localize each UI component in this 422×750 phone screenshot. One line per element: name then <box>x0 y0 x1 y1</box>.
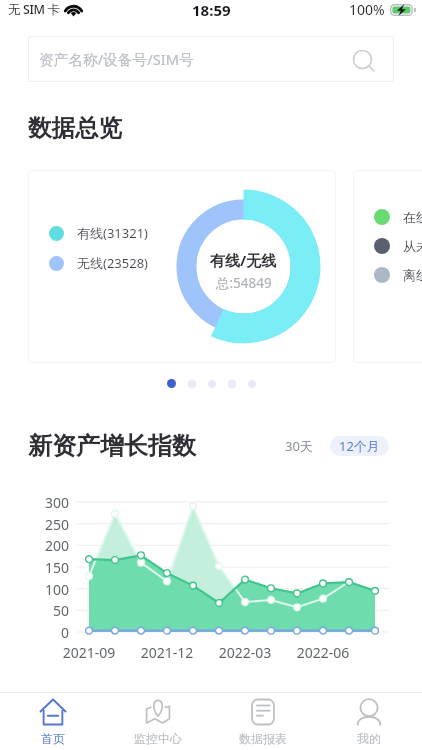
button[interactable]: 12个月 <box>330 436 389 456</box>
button[interactable]: 监控中心 <box>105 693 210 750</box>
button[interactable]: 首页 <box>0 693 105 750</box>
staticText: 监控中心 <box>134 731 182 746</box>
staticText: 数据总览 <box>28 113 122 143</box>
staticText: 300 <box>0 493 69 512</box>
staticText: 30天 <box>285 437 313 455</box>
button[interactable]: 30天 <box>277 432 321 460</box>
staticText: 18:59 <box>192 0 231 20</box>
staticText: 有线/无线 <box>210 250 277 270</box>
staticText: 在线(30021) <box>403 208 422 226</box>
staticText: 250 <box>0 515 69 534</box>
staticText: 有线(31321) <box>77 224 148 242</box>
staticText: 新资产增长指数 <box>28 431 196 461</box>
button[interactable] <box>167 379 176 388</box>
staticText: 2022-03 <box>213 643 277 662</box>
staticText: 首页 <box>41 731 65 746</box>
other: Search <box>351 48 375 72</box>
staticText: 从未在线(200) <box>403 237 422 255</box>
staticText: 150 <box>0 558 69 577</box>
button[interactable] <box>188 380 196 388</box>
button[interactable]: 数据报表 <box>210 693 316 750</box>
staticText: 数据报表 <box>239 731 287 746</box>
button[interactable]: 有线(31321) <box>28 170 336 363</box>
button[interactable] <box>248 380 256 388</box>
staticText: 2021-12 <box>135 643 199 662</box>
staticText: 资产名称/设备号/SIM号 <box>39 49 194 69</box>
staticText: 2021-09 <box>57 643 121 662</box>
staticText: 0 <box>0 623 69 642</box>
staticText: 总:54849 <box>216 274 272 292</box>
staticText: 无线(23528) <box>77 254 148 272</box>
button[interactable] <box>208 380 216 388</box>
staticText: 离线(24628) <box>403 266 422 284</box>
staticText: 100% <box>349 0 385 19</box>
staticText: 100 <box>0 580 69 599</box>
button[interactable] <box>228 380 236 388</box>
button[interactable]: 在线(30021) <box>353 170 422 363</box>
staticText: 50 <box>0 601 69 620</box>
staticText: 200 <box>0 536 69 555</box>
button[interactable]: 我的 <box>316 693 422 750</box>
staticText: 无 SIM 卡 <box>8 1 60 18</box>
staticText: 2022-06 <box>291 643 355 662</box>
staticText: 12个月 <box>339 437 380 455</box>
button[interactable]: 资产名称/设备号/SIM号 <box>28 36 394 82</box>
staticText: 我的 <box>357 731 381 746</box>
